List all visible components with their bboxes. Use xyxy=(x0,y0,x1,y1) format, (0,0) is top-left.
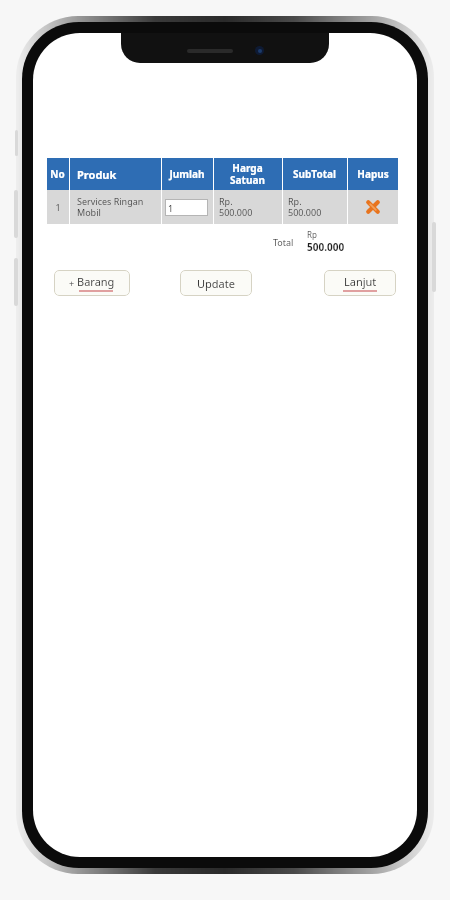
button[interactable]: 1 xyxy=(165,199,208,216)
staticText: + xyxy=(69,277,77,289)
staticText: Lanjut xyxy=(344,274,377,289)
staticText: Produk xyxy=(77,167,117,182)
staticText: Update xyxy=(197,276,235,291)
button[interactable]: Hapus xyxy=(348,190,398,224)
staticText: 1 xyxy=(168,202,174,214)
staticText: No xyxy=(50,167,65,181)
button[interactable]: Lanjut xyxy=(324,270,396,296)
staticText: Services Ringan Mobil xyxy=(77,195,144,219)
staticText: Hapus xyxy=(357,167,389,181)
button[interactable]: + xyxy=(54,270,130,296)
staticText: Jumlah xyxy=(169,167,205,181)
staticText: 500.000 xyxy=(307,240,345,254)
staticText: Rp. 500.000 xyxy=(288,195,322,219)
staticText: Rp. 500.000 xyxy=(219,195,253,219)
staticText: Total xyxy=(273,236,294,248)
staticText: 1 xyxy=(55,201,61,213)
staticText: Harga Satuan xyxy=(230,161,265,187)
button[interactable]: Update xyxy=(180,270,252,296)
staticText: Barang xyxy=(77,274,115,289)
staticText: Rp xyxy=(307,229,317,240)
staticText: SubTotal xyxy=(293,167,336,181)
